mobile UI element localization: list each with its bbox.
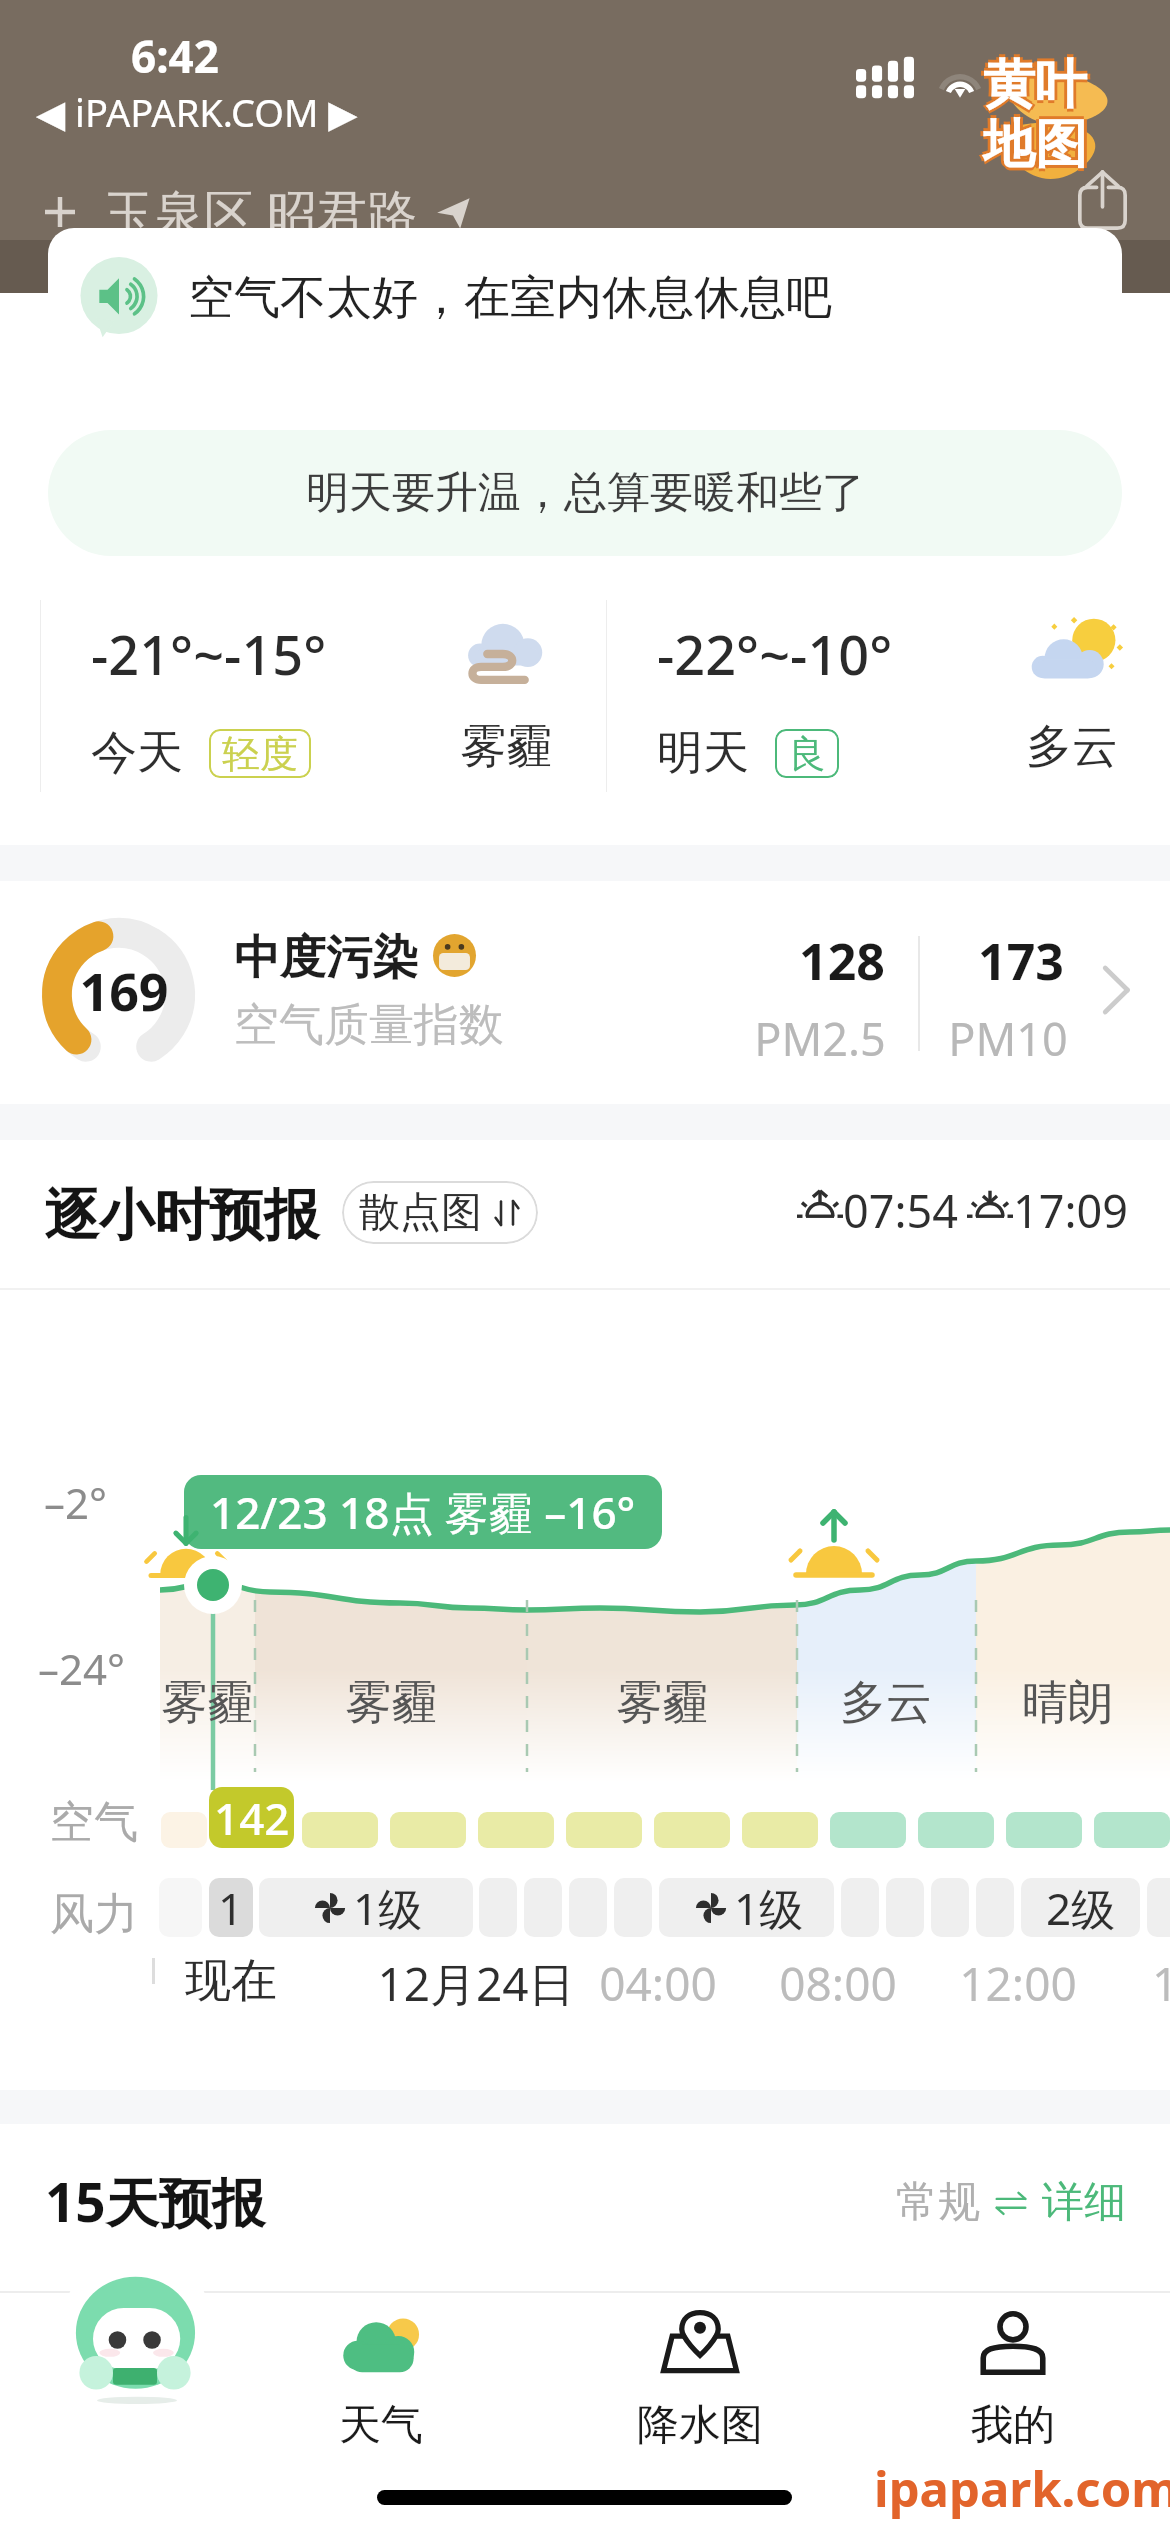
staticText: 我的: [971, 2399, 1055, 2452]
staticText: 中度污染: [234, 929, 418, 987]
button[interactable]: 明天要升温，总算要暖和些了: [48, 430, 1122, 556]
button[interactable]: Share: [1058, 155, 1146, 243]
staticText: 轻度: [222, 730, 298, 778]
staticText: PM10: [938, 1008, 1078, 1069]
staticText: 散点图: [359, 1187, 482, 1239]
staticText: 12:00: [928, 1952, 1108, 2015]
staticText: 1: [218, 1878, 244, 1937]
staticText: ipapark.com: [874, 2455, 1170, 2522]
staticText: 2级: [1046, 1878, 1116, 1937]
staticText: 1: [1152, 1952, 1170, 2015]
staticText: 多云: [797, 1674, 975, 1732]
staticText: 晴朗: [975, 1674, 1161, 1732]
staticText: 1级: [734, 1878, 804, 1937]
staticText: 多云: [1004, 718, 1140, 776]
staticText: PM2.5: [750, 1008, 890, 1069]
staticText: 07:54: [843, 1180, 959, 1241]
staticText: 风力: [50, 1887, 138, 1942]
staticText: 地图: [983, 115, 1087, 181]
staticText: 1级: [353, 1878, 423, 1937]
staticText: 天气: [339, 2399, 423, 2452]
staticText: 玉泉区 昭君路: [104, 178, 417, 246]
staticText: 04:00: [568, 1952, 748, 2015]
button[interactable]: 降水图: [600, 2305, 800, 2452]
staticText: 黄叶: [980, 52, 1084, 118]
button[interactable]: Assistant: [66, 2244, 208, 2386]
staticText: 142: [214, 1788, 290, 1848]
staticText: 15天预报: [45, 2165, 265, 2237]
staticText: ◀ iPAPARK.COM ▶: [36, 86, 358, 138]
staticText: –2°: [44, 1474, 108, 1531]
staticText: -22°~-10°: [657, 617, 893, 691]
staticText: 08:00: [748, 1952, 928, 2015]
staticText: 详细: [1042, 2176, 1126, 2229]
staticText: 12/23 18点 雾霾 –16°: [210, 1482, 636, 1542]
staticText: 黄叶: [986, 52, 1090, 118]
staticText: 173: [951, 927, 1091, 995]
staticText: -21°~-15°: [91, 617, 327, 691]
staticText: 128: [772, 927, 912, 995]
staticText: 雾霾: [148, 1674, 266, 1732]
staticText: 空气不太好，在室内休息休息吧: [188, 269, 832, 327]
button[interactable]: 我的: [913, 2305, 1113, 2452]
staticText: 12月24日: [361, 1952, 591, 2015]
staticText: 雾霾: [255, 1674, 527, 1732]
button[interactable]: 天气: [281, 2305, 481, 2452]
staticText: 逐小时预报: [44, 1181, 319, 1250]
staticText: 黄叶: [983, 49, 1087, 115]
staticText: 地图: [983, 109, 1087, 175]
staticText: 17:09: [1013, 1180, 1129, 1241]
staticText: 明天要升温，总算要暖和些了: [306, 466, 865, 520]
button[interactable]: 169: [0, 881, 1170, 1104]
staticText: 现在: [161, 1952, 301, 2010]
staticText: –24°: [38, 1640, 126, 1697]
button[interactable]: -21°~-15°: [40, 596, 606, 812]
staticText: 良: [788, 730, 826, 778]
staticText: 常规: [896, 2176, 980, 2229]
button[interactable]: 空气不太好，在室内休息休息吧: [48, 228, 1122, 368]
staticText: 雾霾: [527, 1674, 797, 1732]
button[interactable]: -22°~-10°: [606, 596, 1170, 812]
button[interactable]: 散点图: [342, 1181, 538, 1244]
staticText: 空气质量指数: [234, 997, 504, 1054]
staticText: 黄叶: [983, 55, 1087, 121]
staticText: 空气: [50, 1795, 138, 1850]
staticText: 今天: [91, 724, 183, 782]
staticText: 黄叶: [983, 52, 1087, 118]
staticText: 雾霾: [438, 718, 574, 776]
staticText: 明天: [657, 724, 749, 782]
staticText: 169: [78, 955, 170, 1026]
button[interactable]: 常规: [890, 2170, 1132, 2235]
staticText: 地图: [986, 112, 1090, 178]
staticText: 地图: [980, 112, 1084, 178]
staticText: 地图: [983, 112, 1087, 178]
staticText: 降水图: [637, 2399, 763, 2452]
staticText: 6:42: [131, 26, 219, 86]
